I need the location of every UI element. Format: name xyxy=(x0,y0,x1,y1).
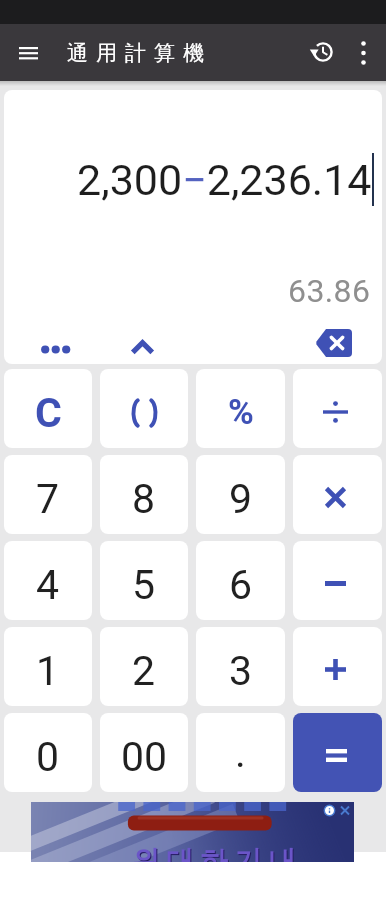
staticText: C xyxy=(35,389,62,437)
staticText: 2 xyxy=(132,647,156,695)
staticText: 63.86 xyxy=(288,272,371,310)
staticText: 2,300−2,236.14 xyxy=(77,155,372,205)
staticText: 00 xyxy=(121,733,168,781)
staticText: . xyxy=(235,729,246,777)
staticText: 위대하기내 xyxy=(129,844,299,862)
staticText: 위대하기내 xyxy=(130,845,300,862)
staticText: 0 xyxy=(36,733,60,781)
staticText: 1 xyxy=(36,647,60,695)
staticText: % xyxy=(228,392,254,433)
staticText: 6 xyxy=(229,561,253,609)
staticText: 7 xyxy=(36,475,60,523)
staticText: 8 xyxy=(132,475,156,523)
staticText: 3 xyxy=(229,647,253,695)
staticText: 通用計算機 xyxy=(63,40,208,66)
staticText: 9 xyxy=(229,475,253,523)
staticText: 5 xyxy=(132,561,156,609)
staticText: 4 xyxy=(36,561,60,609)
